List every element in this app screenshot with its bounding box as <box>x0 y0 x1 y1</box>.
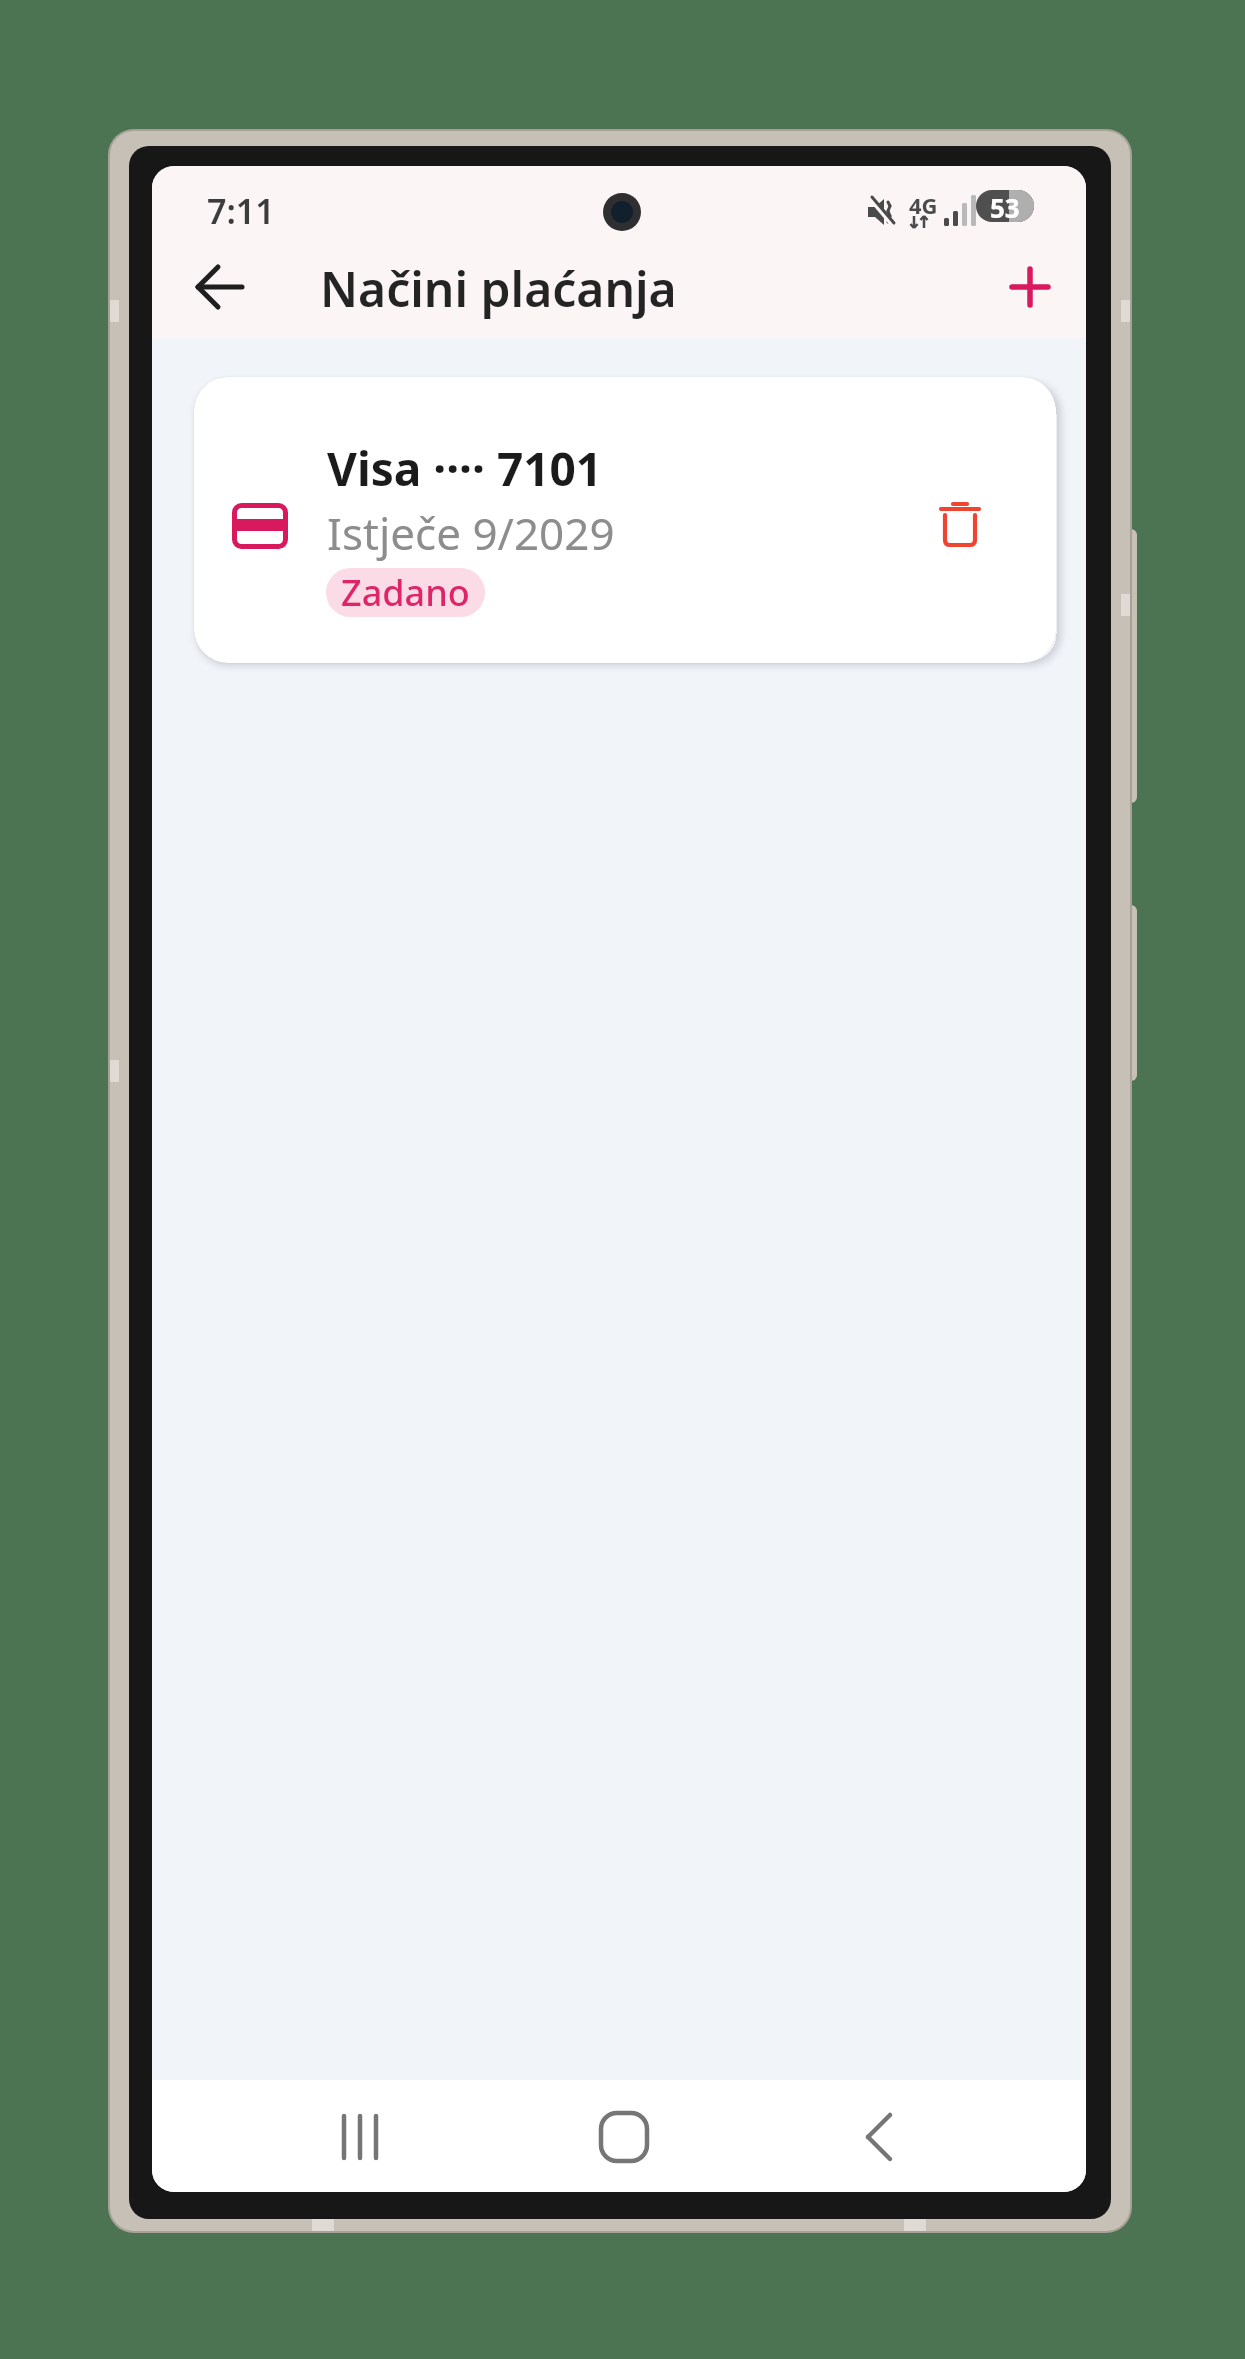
button[interactable]: Visa ···· 7101 <box>194 377 1056 663</box>
button[interactable] <box>1007 264 1053 310</box>
staticText: 53 <box>990 190 1020 222</box>
staticText: Istječe 9/2029 <box>327 503 615 563</box>
staticText: 4G <box>909 190 938 220</box>
button[interactable] <box>196 263 244 311</box>
staticText: Zadano <box>341 568 470 617</box>
staticText: Načini plaćanja <box>320 256 677 321</box>
button[interactable] <box>934 497 986 553</box>
button[interactable] <box>328 2110 398 2164</box>
staticText: 7:11 <box>207 188 275 234</box>
staticText: Visa ···· 7101 <box>327 437 603 500</box>
button[interactable] <box>596 2110 652 2164</box>
button[interactable] <box>852 2110 912 2164</box>
